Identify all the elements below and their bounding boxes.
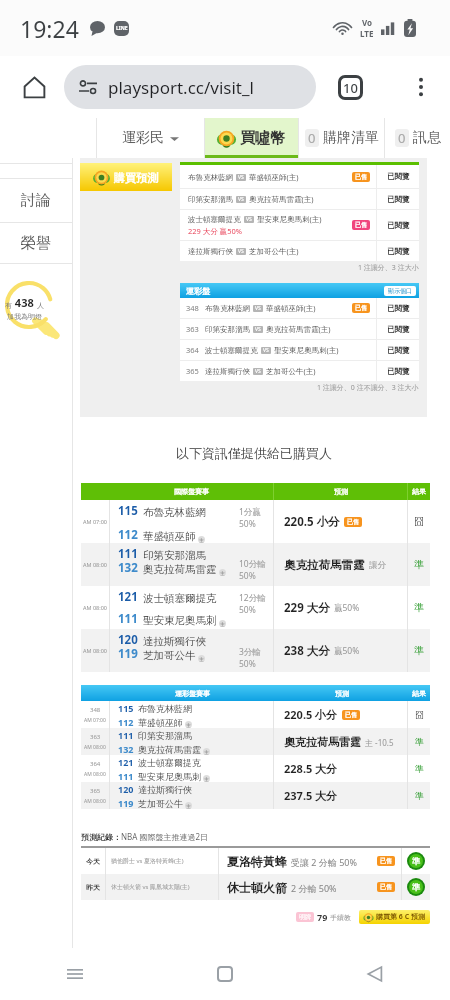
button[interactable]: Tabs (337, 74, 363, 100)
staticText: 購買第 6 C 預測 (376, 912, 425, 922)
staticText: 主 (186, 722, 191, 728)
staticText: 50% (239, 604, 256, 616)
button[interactable]: 0 (299, 118, 384, 158)
staticText: 119 (118, 797, 134, 809)
staticText: 112 (118, 527, 138, 543)
staticText: AM 08:00 (84, 798, 106, 805)
staticText: 昨天 (86, 883, 100, 892)
staticText: 奧克拉荷馬雷霆 (143, 563, 217, 576)
staticText: 220.5 小分 (284, 707, 338, 722)
staticText: 達拉斯獨行俠 (188, 247, 233, 256)
button[interactable]: 討論 (0, 179, 72, 222)
staticText: 已閱覽 (387, 367, 410, 376)
staticText: 364 (90, 760, 101, 768)
staticText: 訊息 (413, 129, 441, 147)
button[interactable]: 運彩民 (97, 118, 204, 158)
staticText: 50% (239, 518, 256, 530)
staticText: 華盛頓巫師 (138, 717, 183, 728)
staticText: 115 (118, 702, 134, 714)
staticText: 50% (239, 570, 256, 582)
staticText: AM 08:00 (83, 604, 107, 611)
staticText: 111 (118, 546, 138, 562)
staticText: 印第安那溜馬 (205, 325, 250, 334)
staticText: VS (255, 368, 261, 375)
staticText: 120 (118, 632, 138, 648)
staticText: 120 (118, 783, 134, 795)
button[interactable]: 榮譽 (0, 223, 72, 263)
button[interactable]: 購買預測 (80, 163, 172, 191)
staticText: VS (238, 174, 244, 181)
staticText: 1 注讓分、0 注不讓分、3 注大小 (317, 383, 419, 393)
button[interactable]: Recent apps (0, 948, 150, 1000)
staticText: 已售 (380, 857, 392, 865)
staticText: 10分輸 (239, 558, 266, 570)
staticText: 364 (186, 345, 199, 355)
staticText: 印第安那溜馬 (138, 730, 192, 741)
button[interactable]: playsport.cc/visit_l (64, 65, 316, 109)
staticText: 已售 (355, 221, 367, 229)
staticText: 準 (415, 736, 424, 747)
staticText: 準 (415, 790, 424, 801)
staticText: LINE (116, 25, 128, 32)
staticText: 奧克拉荷馬雷霆 (138, 744, 201, 755)
staticText: 已售 (345, 711, 357, 719)
staticText: 達拉斯獨行俠 (143, 635, 206, 648)
staticText: 奧克拉荷馬雷霆 (284, 558, 365, 572)
staticText: 365 (186, 366, 199, 376)
staticText: 人 (37, 301, 44, 310)
staticText: 芝加哥公牛(主) (266, 366, 316, 376)
staticText: 布魯克林藍網 (138, 703, 192, 714)
staticText: 主 (186, 803, 191, 809)
staticText: 布魯克林藍網 (205, 304, 250, 313)
staticText: 0 (308, 129, 316, 147)
staticText: 猶他爵士 vs 夏洛特黃蜂(主) (111, 857, 184, 865)
staticText: 12分輸 (239, 592, 266, 604)
button[interactable]: 0 (385, 118, 450, 158)
staticText: VS (255, 305, 261, 312)
button[interactable]: 購買第 6 C 預測 (359, 910, 430, 924)
staticText: 已閱覽 (387, 325, 410, 334)
staticText: 準 (415, 763, 424, 774)
staticText: 預測 (335, 689, 349, 698)
staticText: 討論 (21, 191, 51, 210)
staticText: 10 (343, 79, 358, 97)
staticText: 奧克拉荷馬雷霆 (284, 735, 361, 749)
staticText: 結果 (412, 487, 426, 496)
staticText: 休士頓火箭 vs 鳳凰城太陽(主) (111, 883, 190, 891)
button[interactable]: Back (300, 948, 450, 1000)
staticText: 主 (220, 621, 225, 627)
staticText: VS (263, 347, 269, 354)
staticText: 波士頓塞爾提克 (188, 215, 241, 224)
staticText: 111 (118, 729, 134, 741)
staticText: 預測 (334, 487, 348, 496)
staticText: 讓分 (369, 560, 386, 571)
staticText: 已售 (355, 173, 367, 181)
button[interactable]: 顯示個口 (384, 286, 416, 296)
button[interactable]: 買噓幣 (205, 118, 298, 158)
staticText: 聖安東尼奧馬刺(主) (274, 345, 339, 355)
staticText: 華盛頓巫師 (143, 530, 196, 543)
button[interactable]: Home (12, 65, 56, 109)
staticText: 112 (118, 716, 134, 728)
staticText: 229 大分 贏50% (188, 226, 243, 236)
staticText: 主 (199, 537, 204, 543)
staticText: 348 (186, 303, 199, 313)
staticText: 顯示個口 (388, 287, 412, 295)
staticText: 已閱覽 (387, 304, 410, 313)
staticText: 芝加哥公牛 (143, 649, 196, 662)
staticText: 印第安那溜馬 (143, 549, 206, 562)
staticText: 達拉斯獨行俠 (205, 367, 250, 376)
staticText: 購牌清單 (323, 129, 379, 147)
staticText: 準 (412, 856, 420, 866)
staticText: 購買預測 (114, 171, 158, 185)
staticText: 華盛頓巫師(主) (249, 172, 299, 182)
staticText: 波士頓塞爾提克 (138, 757, 201, 768)
staticText: 運彩盤賽事 (175, 689, 210, 698)
staticText: 已閱覽 (387, 172, 410, 181)
button[interactable]: Home (150, 948, 300, 1000)
staticText: VS (255, 326, 261, 333)
staticText: 已售 (355, 304, 367, 312)
button[interactable]: More options (402, 68, 440, 106)
staticText: 主 (204, 776, 209, 782)
staticText: Vo (362, 17, 373, 28)
